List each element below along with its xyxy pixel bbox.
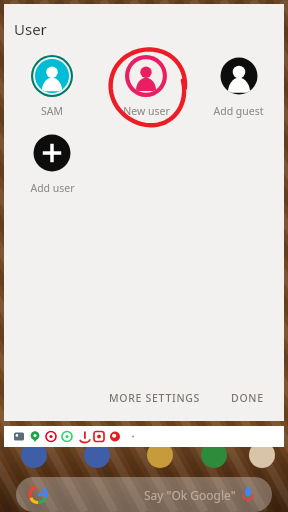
button[interactable]: DONE — [223, 383, 272, 413]
button[interactable]: Google search — [16, 477, 272, 512]
staticText: MORE SETTINGS — [109, 391, 201, 405]
button[interactable]: MORE SETTINGS — [101, 383, 209, 413]
staticText: New user — [123, 104, 170, 118]
button[interactable]: New user — [99, 53, 193, 118]
button[interactable]: Add user — [5, 130, 99, 195]
button[interactable]: Add guest — [193, 53, 284, 118]
staticText: Add user — [30, 181, 75, 195]
staticText: User — [14, 19, 47, 39]
staticText: Say "Ok Google" — [144, 487, 236, 503]
staticText: DONE — [231, 391, 264, 405]
staticText: Add guest — [213, 104, 264, 118]
staticText: SAM — [41, 104, 63, 118]
button[interactable]: SAM — [5, 53, 99, 118]
